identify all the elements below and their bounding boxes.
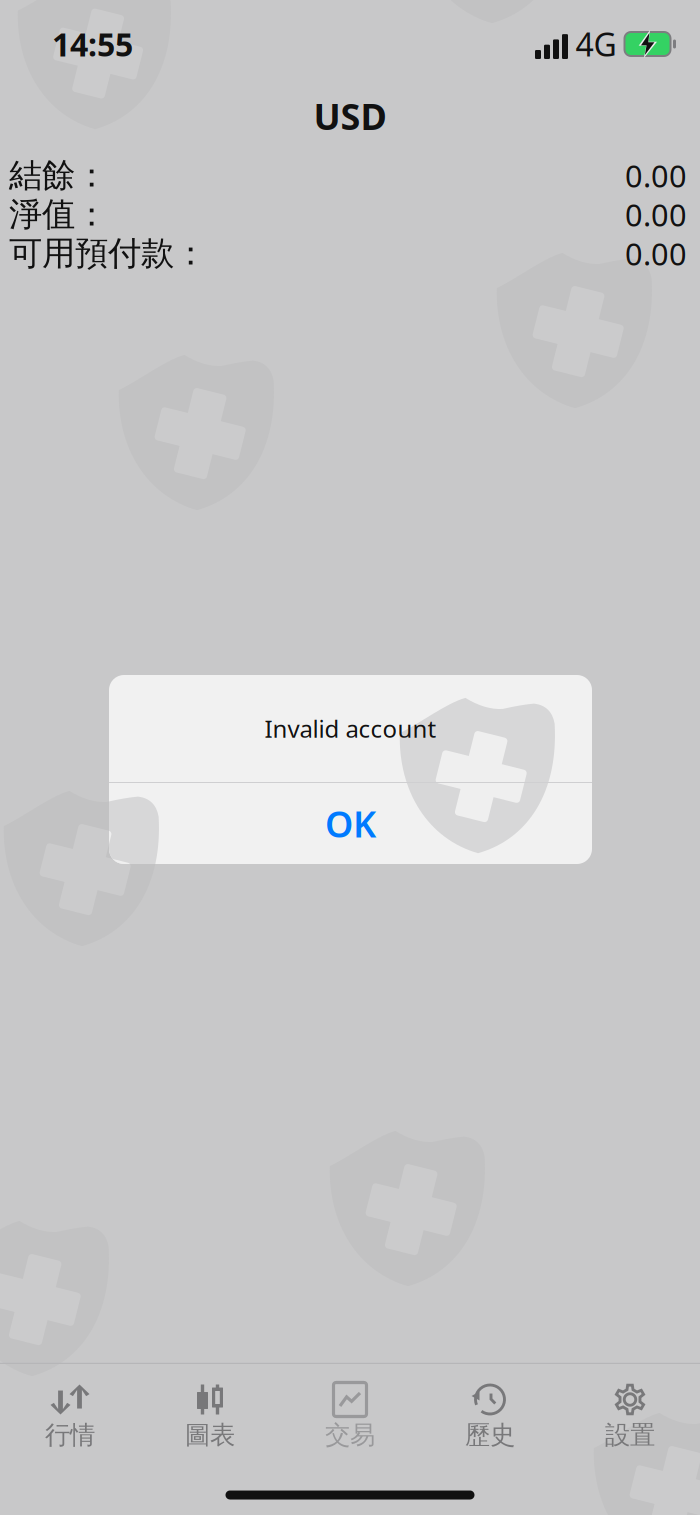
staticText: 圖表 bbox=[185, 1419, 235, 1451]
staticText: 可用預付款： bbox=[9, 232, 207, 274]
staticText: 0.00 bbox=[625, 194, 687, 235]
staticText: 交易 bbox=[325, 1419, 375, 1451]
staticText: USD bbox=[313, 91, 386, 140]
button[interactable]: OK bbox=[109, 783, 592, 864]
staticText: 行情 bbox=[45, 1419, 95, 1451]
staticText: 設置 bbox=[605, 1419, 655, 1451]
staticText: 0.00 bbox=[625, 155, 687, 196]
staticText: 14:55 bbox=[52, 22, 133, 66]
button[interactable]: 設置 bbox=[560, 1364, 700, 1457]
button[interactable]: 歷史 bbox=[420, 1364, 560, 1457]
button[interactable]: 圖表 bbox=[140, 1364, 280, 1457]
staticText: 0.00 bbox=[625, 233, 687, 274]
staticText: 歷史 bbox=[465, 1419, 515, 1451]
button[interactable]: 交易 bbox=[280, 1364, 420, 1457]
staticText: 結餘： bbox=[9, 154, 108, 196]
button[interactable]: 行情 bbox=[0, 1364, 140, 1457]
staticText: 4G bbox=[575, 22, 616, 66]
staticText: OK bbox=[325, 799, 376, 848]
staticText: Invalid account bbox=[264, 712, 436, 745]
staticText: 淨值： bbox=[9, 193, 108, 235]
